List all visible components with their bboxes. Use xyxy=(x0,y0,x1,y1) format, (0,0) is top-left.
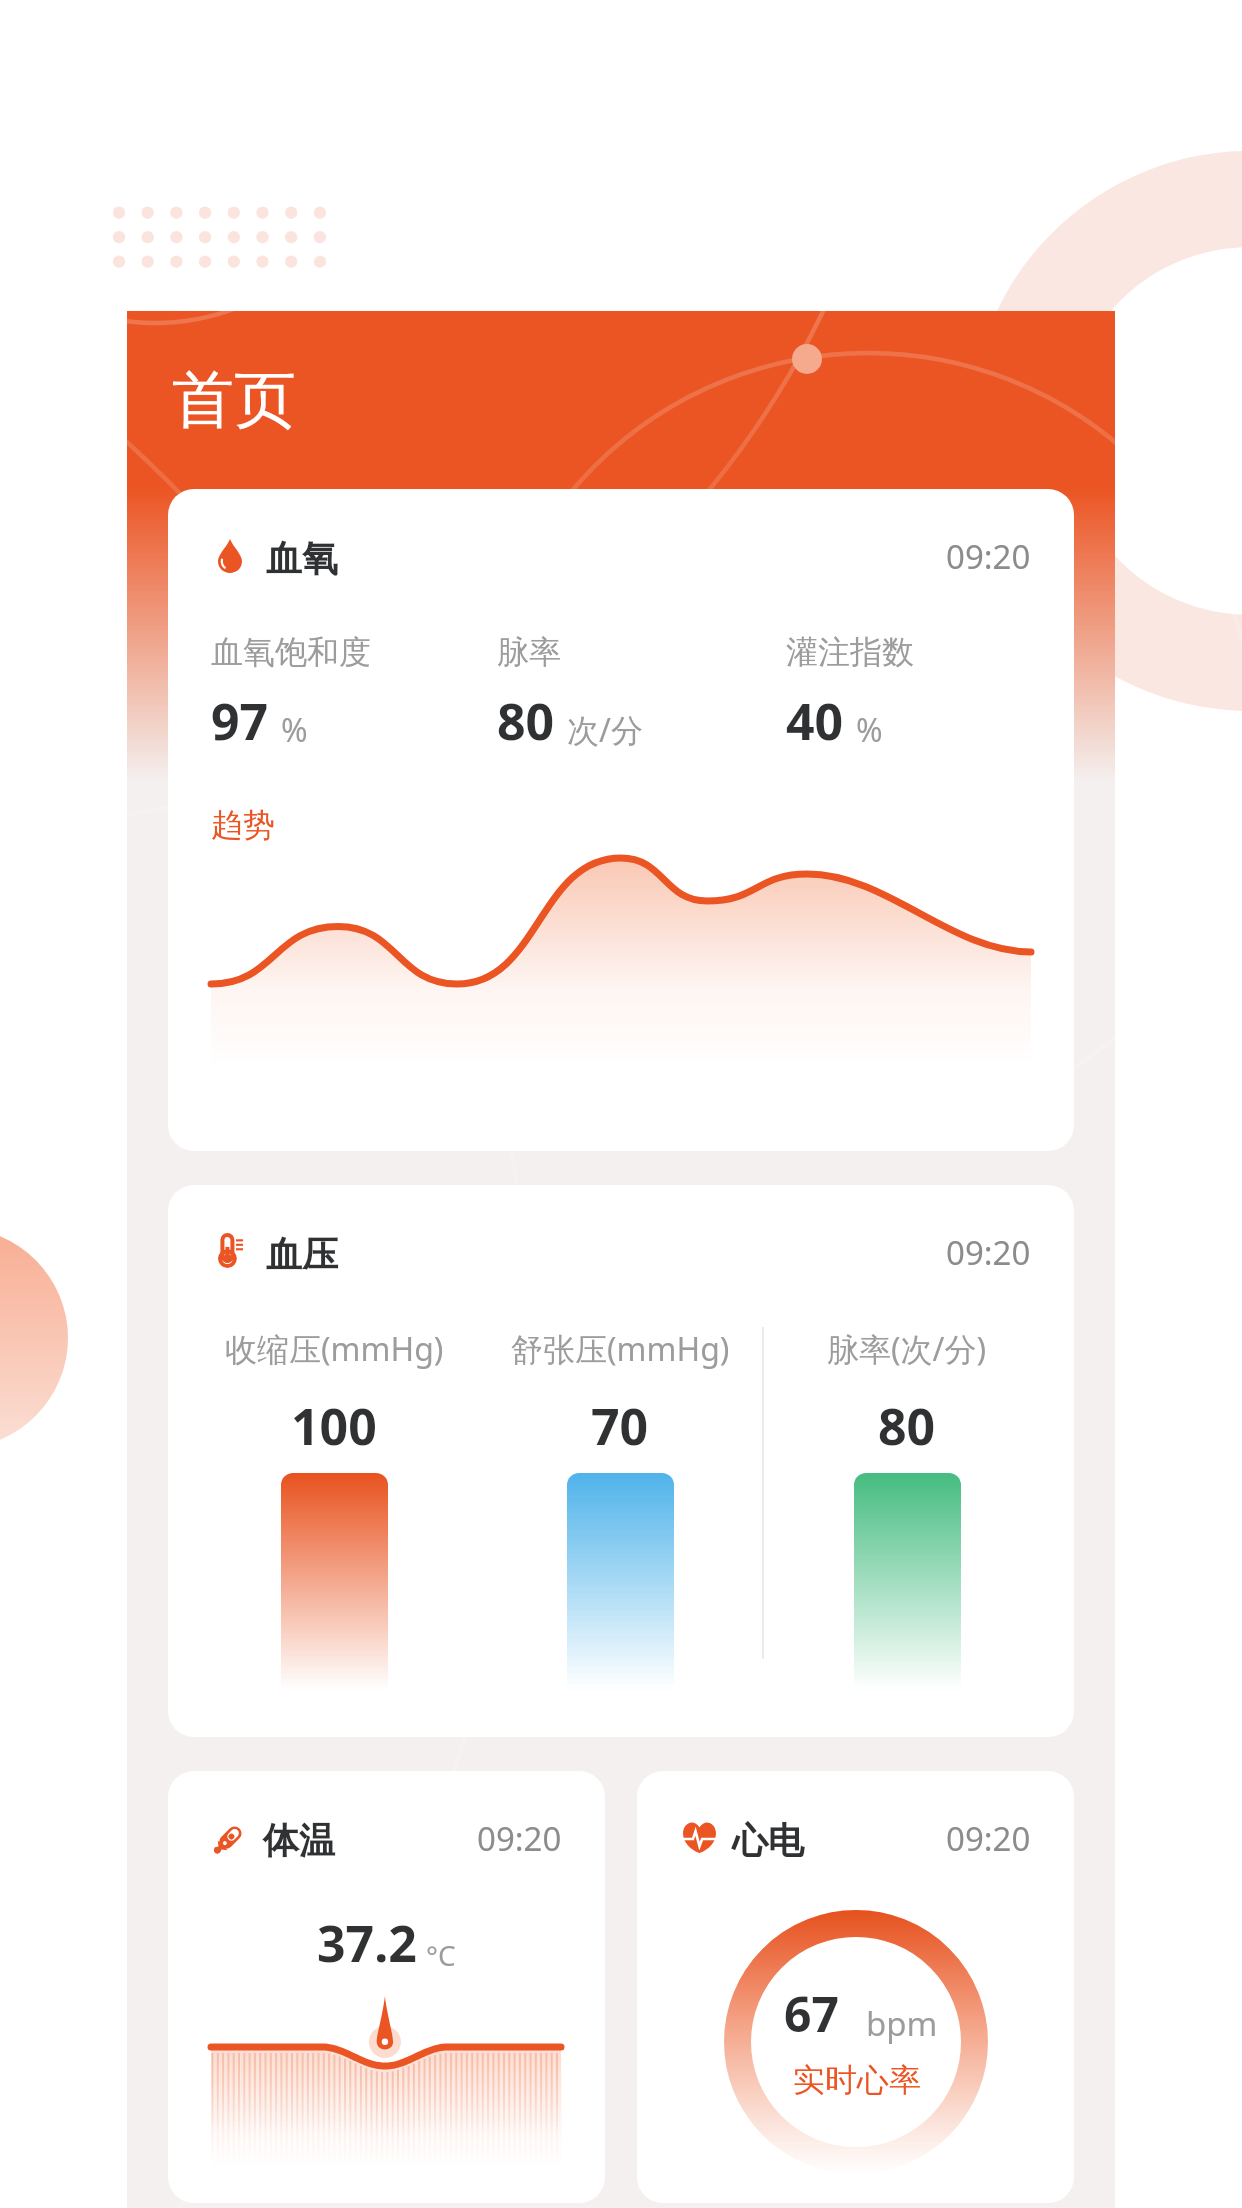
staticText: 80 xyxy=(497,687,555,755)
staticText: 血氧饱和度 xyxy=(211,632,371,672)
staticText: 趋势 xyxy=(211,805,275,845)
staticText: 37.2 xyxy=(317,1909,417,1977)
staticText: 收缩压(mmHg) xyxy=(225,1327,444,1371)
staticText: % xyxy=(281,708,308,752)
staticText: % xyxy=(856,708,883,752)
staticText: 80 xyxy=(878,1392,936,1460)
staticText: 67 xyxy=(784,1981,839,2046)
staticText: 舒张压(mmHg) xyxy=(511,1327,730,1371)
staticText: 09:20 xyxy=(477,1816,562,1861)
staticText: 40 xyxy=(786,687,844,755)
staticText: 09:20 xyxy=(946,534,1031,579)
button[interactable]: 血氧 xyxy=(168,489,1074,1151)
staticText: 实时心率 xyxy=(793,2060,921,2100)
staticText: 血压 xyxy=(266,1232,338,1277)
staticText: 100 xyxy=(291,1392,377,1460)
button[interactable]: 体温 37.2 °C xyxy=(168,1771,605,2203)
button[interactable]: 血压 xyxy=(168,1185,1074,1737)
staticText: bpm xyxy=(866,2001,938,2046)
button[interactable]: 心电 实时心率 67 bpm xyxy=(637,1771,1074,2203)
staticText: °C xyxy=(426,1936,456,1974)
staticText: 灌注指数 xyxy=(786,632,914,672)
staticText: 体温 xyxy=(263,1818,335,1863)
staticText: 09:20 xyxy=(946,1816,1031,1861)
staticText: 心电 xyxy=(732,1818,804,1863)
staticText: 血氧 xyxy=(266,536,338,581)
staticText: 09:20 xyxy=(946,1230,1031,1275)
staticText: 97 xyxy=(211,687,269,755)
staticText: 脉率(次/分) xyxy=(827,1327,987,1371)
staticText: 70 xyxy=(591,1392,649,1460)
staticText: 首页 xyxy=(172,361,296,439)
staticText: 次/分 xyxy=(567,708,643,752)
staticText: 脉率 xyxy=(497,632,561,672)
